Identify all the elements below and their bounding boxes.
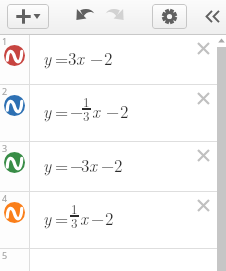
button[interactable]: 4: [0, 192, 226, 248]
button[interactable]: Delete expression 4: [200, 192, 226, 248]
staticText: 2: [2, 85, 8, 97]
staticText: x: [89, 153, 97, 177]
button[interactable]: Settings: [152, 4, 187, 29]
staticText: −: [101, 153, 115, 177]
staticText: =: [55, 206, 69, 230]
staticText: 2: [114, 153, 123, 177]
staticText: 3: [71, 213, 78, 231]
staticText: −: [90, 46, 104, 70]
staticText: 3: [83, 106, 90, 124]
button[interactable]: Undo: [76, 8, 97, 22]
button[interactable]: Add expression: [7, 4, 49, 29]
staticText: x: [80, 206, 88, 230]
staticText: =: [55, 99, 69, 123]
staticText: x: [92, 99, 100, 123]
button[interactable]: Delete expression 3: [200, 142, 226, 191]
staticText: y: [43, 99, 52, 123]
staticText: =: [55, 153, 69, 177]
staticText: 1: [2, 35, 8, 47]
button[interactable]: Redo: [105, 8, 126, 22]
staticText: 1: [71, 199, 78, 217]
staticText: 3: [68, 46, 77, 70]
staticText: −: [70, 153, 84, 177]
staticText: −: [106, 99, 120, 123]
staticText: y: [43, 153, 52, 177]
button[interactable]: 3: [0, 142, 226, 191]
staticText: y: [43, 46, 52, 70]
staticText: −: [70, 99, 84, 123]
button[interactable]: 5: [0, 249, 226, 271]
staticText: =: [55, 46, 69, 70]
staticText: 3: [81, 153, 90, 177]
staticText: 2: [120, 99, 129, 123]
button[interactable]: 1: [0, 35, 226, 84]
staticText: 5: [2, 249, 8, 261]
staticText: −: [91, 206, 105, 230]
staticText: x: [76, 46, 84, 70]
staticText: 1: [83, 92, 90, 110]
button[interactable]: Delete expression 1: [200, 35, 226, 84]
button[interactable]: Delete expression 2: [200, 85, 226, 141]
button[interactable]: Scroll up: [217, 35, 226, 47]
staticText: 2: [104, 46, 113, 70]
staticText: 4: [2, 192, 8, 204]
staticText: y: [43, 206, 52, 230]
button[interactable]: 2: [0, 85, 226, 141]
staticText: 2: [105, 206, 114, 230]
button[interactable]: Collapse panel: [202, 4, 224, 29]
staticText: 3: [2, 142, 8, 154]
